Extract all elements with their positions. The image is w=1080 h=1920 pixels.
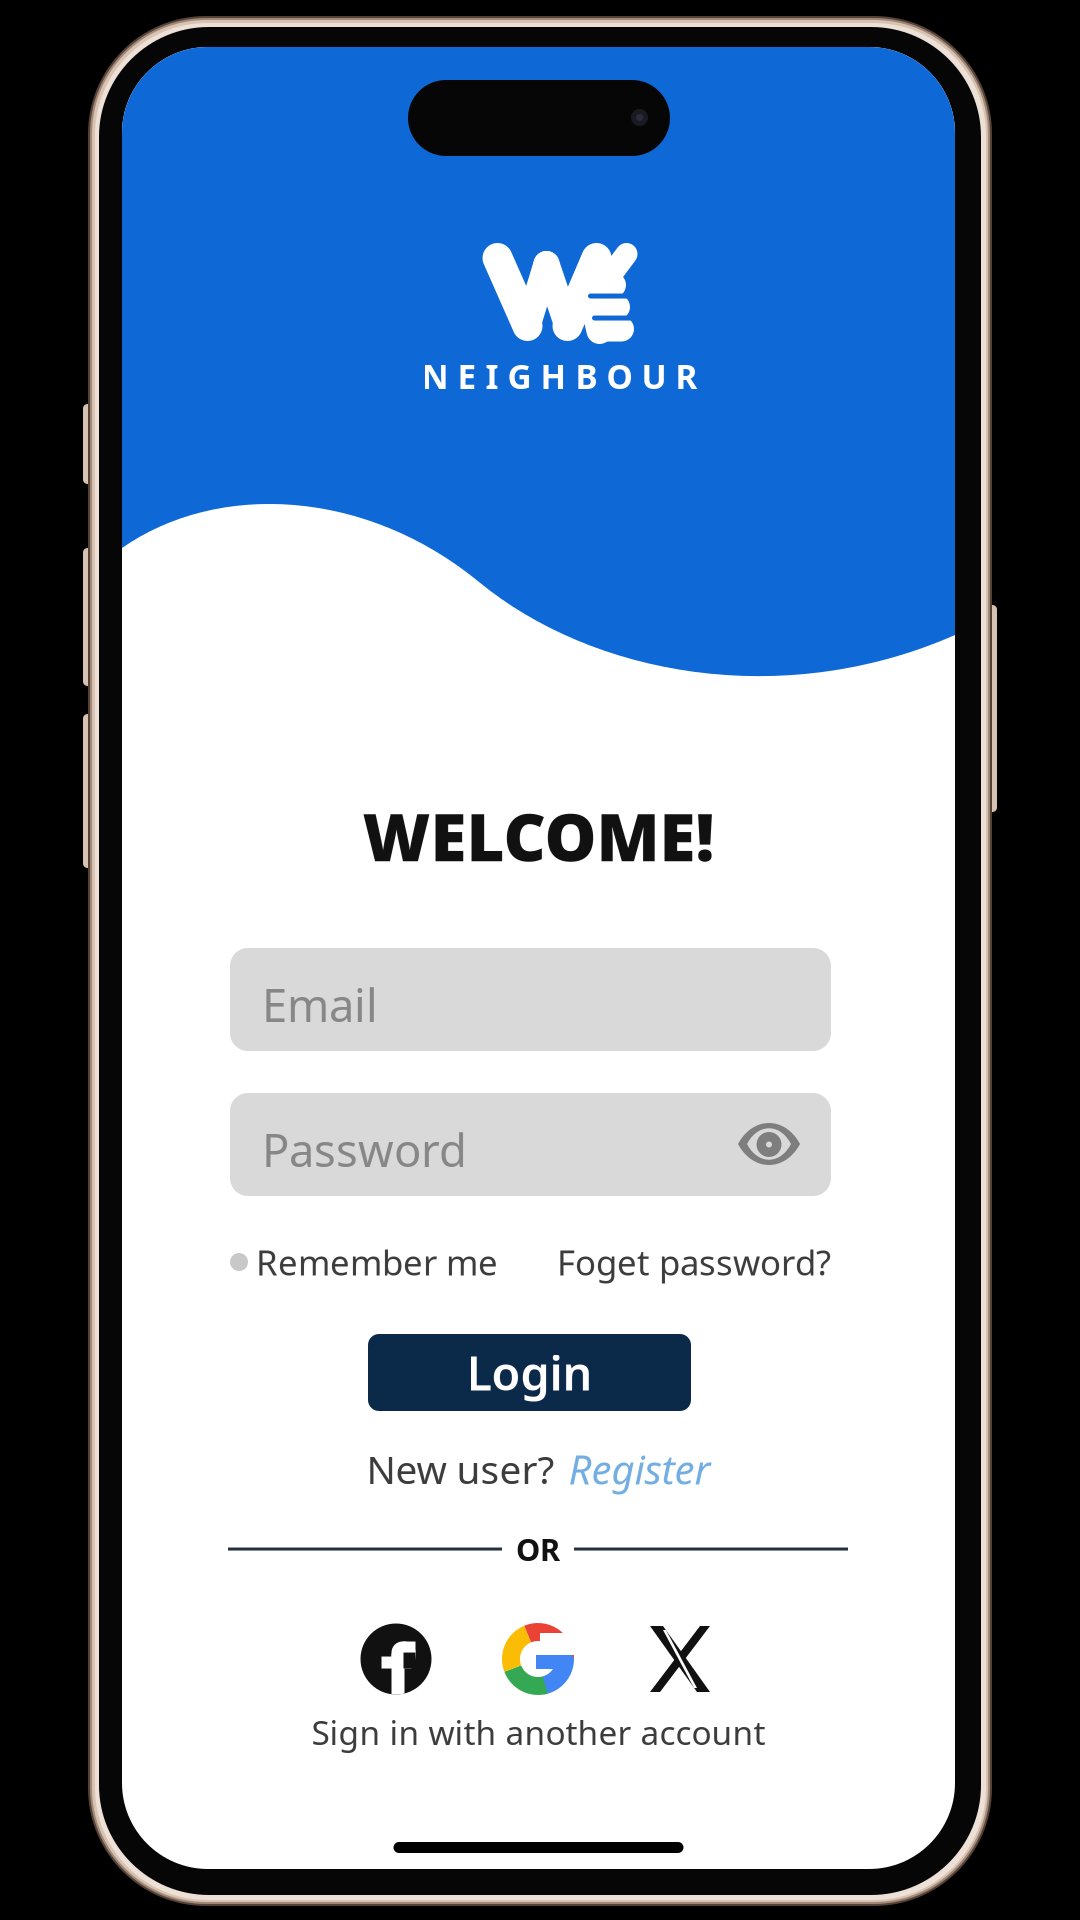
staticText: Password xyxy=(262,1119,467,1180)
staticText: Email xyxy=(262,974,378,1035)
button[interactable]: Password xyxy=(230,1093,831,1196)
button[interactable]: Sign in with X xyxy=(650,1626,710,1692)
button[interactable]: Foget password? xyxy=(557,1239,831,1285)
staticText: Sign in with another account xyxy=(311,1710,765,1754)
staticText: Login xyxy=(466,1341,592,1403)
staticText: New user? xyxy=(366,1443,554,1495)
button[interactable]: Email xyxy=(230,948,831,1051)
staticText: OR xyxy=(516,1529,560,1569)
button[interactable]: Remember me xyxy=(230,1239,498,1285)
staticText: NEIGHBOUR xyxy=(421,354,697,398)
staticText: Register xyxy=(568,1442,710,1495)
button[interactable]: Register xyxy=(568,1442,710,1495)
button[interactable]: Sign in with Facebook xyxy=(360,1623,431,1694)
button[interactable]: Sign in with Google xyxy=(502,1623,574,1695)
staticText: WELCOME! xyxy=(362,793,714,879)
button[interactable]: Login xyxy=(368,1334,691,1411)
staticText: Remember me xyxy=(256,1239,498,1285)
staticText: Foget password? xyxy=(557,1239,831,1285)
